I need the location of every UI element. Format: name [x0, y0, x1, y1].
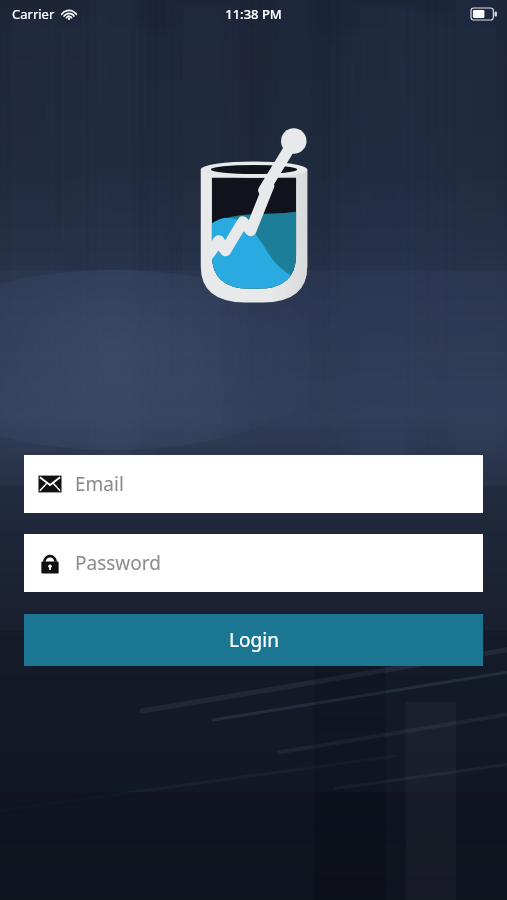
button[interactable]: Login	[24, 614, 483, 666]
staticText: Carrier	[12, 5, 55, 23]
staticText: 11:38 PM	[225, 5, 282, 23]
staticText: Email	[75, 471, 124, 497]
staticText: Login	[229, 627, 279, 653]
button[interactable]: Password	[24, 534, 483, 592]
button[interactable]: Email	[24, 455, 483, 513]
staticText: Password	[75, 550, 161, 576]
